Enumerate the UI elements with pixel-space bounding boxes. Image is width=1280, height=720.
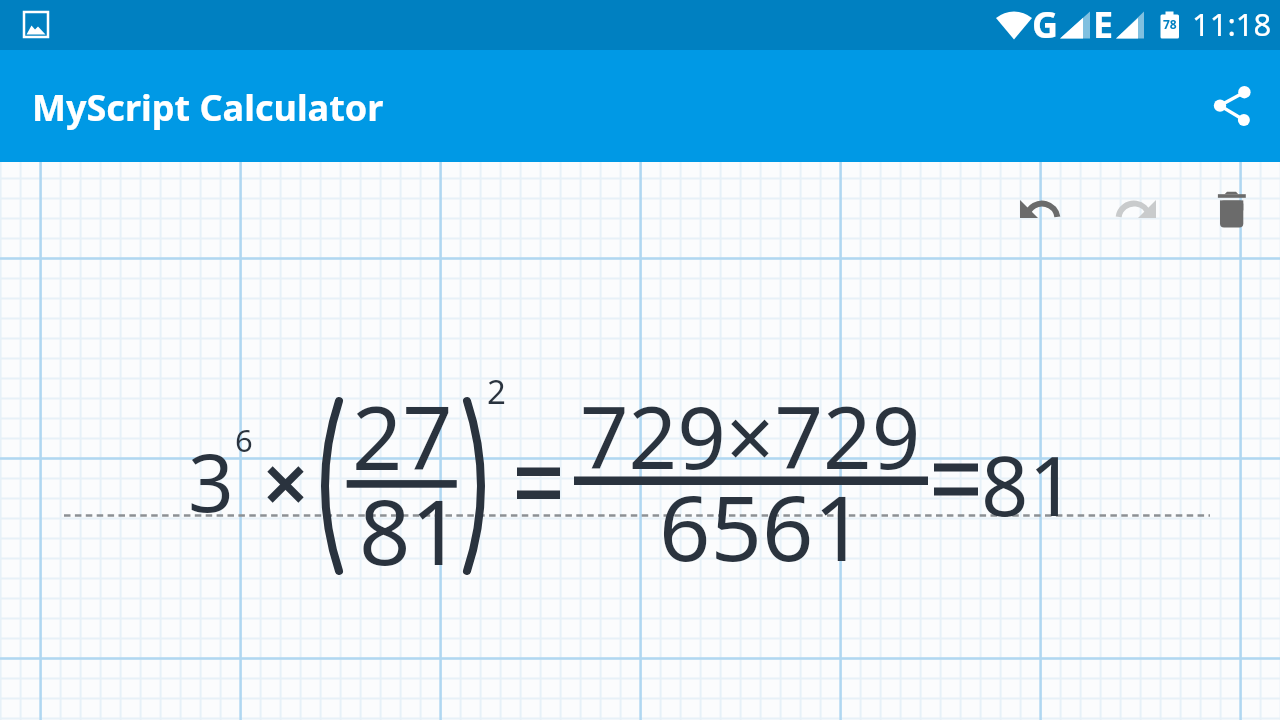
staticText: G <box>1032 0 1059 49</box>
staticText: 6 <box>235 419 253 461</box>
button[interactable] <box>1212 186 1256 232</box>
staticText: 3 <box>188 426 234 535</box>
button[interactable] <box>1204 78 1260 134</box>
staticText: 27 <box>352 376 453 496</box>
button[interactable] <box>1110 190 1162 226</box>
staticText: 81 <box>981 427 1076 540</box>
staticText: 6561 <box>659 465 865 588</box>
staticText: 11:18 <box>1192 3 1272 45</box>
staticText: 78 <box>1163 16 1177 32</box>
staticText: 729×729 <box>580 378 921 494</box>
button[interactable] <box>1014 190 1066 226</box>
staticText: 81 <box>359 469 462 592</box>
staticText: MyScript Calculator <box>32 83 384 132</box>
staticText: 2 <box>487 369 506 414</box>
staticText: E <box>1093 0 1114 49</box>
